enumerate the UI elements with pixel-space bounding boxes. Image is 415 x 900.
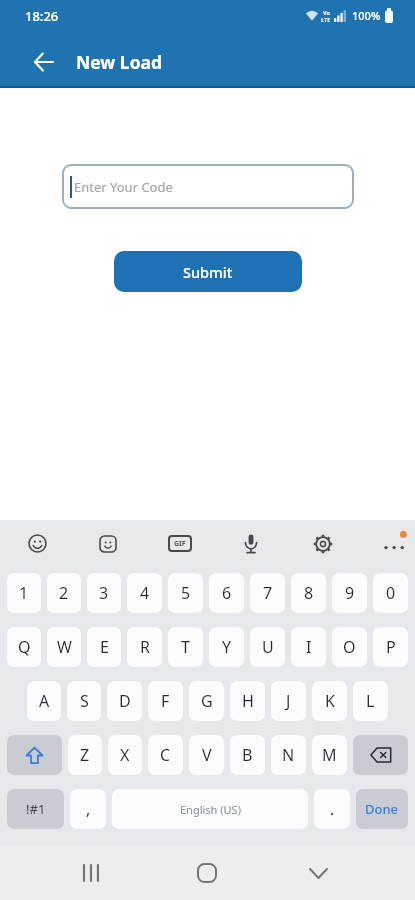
button[interactable]: B xyxy=(230,735,265,775)
button[interactable]: K xyxy=(312,681,347,721)
staticText: V xyxy=(202,744,212,766)
button[interactable]: D xyxy=(107,681,142,721)
button[interactable]: Enter Your Code xyxy=(62,164,354,209)
button[interactable]: Q xyxy=(7,627,41,667)
staticText: 2 xyxy=(59,582,69,604)
staticText: J xyxy=(286,690,291,712)
staticText: X xyxy=(120,744,130,766)
button[interactable] xyxy=(19,520,55,567)
button[interactable]: 6 xyxy=(209,573,244,613)
staticText: O xyxy=(343,636,356,658)
staticText: 5 xyxy=(181,582,191,604)
button[interactable]: M xyxy=(312,735,347,775)
staticText: 4 xyxy=(140,582,150,604)
staticText: Q xyxy=(18,636,31,658)
staticText: K xyxy=(325,690,335,712)
staticText: T xyxy=(181,636,190,658)
button[interactable]: P xyxy=(373,627,408,667)
staticText: Y xyxy=(222,636,232,658)
button[interactable]: S xyxy=(67,681,101,721)
staticText: 18:26 xyxy=(25,7,59,25)
staticText: , xyxy=(86,798,91,820)
staticText: . xyxy=(330,798,335,820)
staticText: L xyxy=(366,690,375,712)
button[interactable]: R xyxy=(127,627,162,667)
button[interactable]: W xyxy=(47,627,81,667)
staticText: 100% xyxy=(352,8,381,23)
button[interactable]: English (US) xyxy=(112,789,308,829)
button[interactable] xyxy=(298,853,338,893)
button[interactable] xyxy=(70,853,110,893)
button[interactable]: Z xyxy=(68,735,102,775)
staticText: 7 xyxy=(263,582,273,604)
button[interactable]: I xyxy=(291,627,326,667)
button[interactable]: . xyxy=(314,789,350,829)
button[interactable]: H xyxy=(230,681,265,721)
button[interactable]: L xyxy=(353,681,388,721)
staticText: New Load xyxy=(76,50,163,74)
staticText: A xyxy=(39,690,50,712)
staticText: E xyxy=(100,636,109,658)
staticText: W xyxy=(57,636,72,658)
button[interactable]: V xyxy=(189,735,224,775)
staticText: 1 xyxy=(19,582,29,604)
staticText: GIF xyxy=(174,539,186,549)
staticText: LTE xyxy=(321,16,331,23)
button[interactable]: A xyxy=(27,681,61,721)
button[interactable]: Y xyxy=(209,627,244,667)
staticText: 0 xyxy=(386,582,396,604)
button[interactable]: !#1 xyxy=(7,789,64,829)
staticText: D xyxy=(119,690,131,712)
button[interactable]: U xyxy=(250,627,285,667)
button[interactable]: 8 xyxy=(291,573,326,613)
button[interactable] xyxy=(187,853,227,893)
staticText: M xyxy=(322,744,337,766)
button[interactable] xyxy=(90,520,126,567)
button[interactable]: E xyxy=(87,627,121,667)
button[interactable]: 5 xyxy=(168,573,203,613)
staticText: 9 xyxy=(345,582,355,604)
button[interactable]: 1 xyxy=(7,573,41,613)
button[interactable]: 0 xyxy=(373,573,408,613)
staticText: 3 xyxy=(99,582,109,604)
staticText: G xyxy=(201,690,213,712)
staticText: Enter Your Code xyxy=(74,178,173,196)
staticText: U xyxy=(262,636,274,658)
staticText: N xyxy=(282,744,295,766)
staticText: Submit xyxy=(183,262,233,282)
staticText: P xyxy=(386,636,396,658)
staticText: English (US) xyxy=(180,802,241,817)
button[interactable]: 4 xyxy=(127,573,162,613)
button[interactable]: J xyxy=(271,681,306,721)
button[interactable]: X xyxy=(108,735,142,775)
button[interactable]: 7 xyxy=(250,573,285,613)
button[interactable]: F xyxy=(148,681,183,721)
button[interactable]: O xyxy=(332,627,367,667)
staticText: 6 xyxy=(222,582,232,604)
staticText: Done xyxy=(365,800,399,818)
button[interactable]: Done xyxy=(356,789,408,829)
staticText: R xyxy=(140,636,150,658)
staticText: F xyxy=(161,690,170,712)
button[interactable] xyxy=(34,41,76,83)
button[interactable] xyxy=(353,735,408,775)
button[interactable]: 3 xyxy=(87,573,121,613)
button[interactable] xyxy=(374,520,410,567)
button[interactable]: C xyxy=(148,735,183,775)
button[interactable] xyxy=(305,520,341,567)
staticText: S xyxy=(80,690,89,712)
button[interactable]: N xyxy=(271,735,306,775)
staticText: 8 xyxy=(304,582,314,604)
button[interactable]: 2 xyxy=(47,573,81,613)
staticText: B xyxy=(242,744,253,766)
button[interactable]: GIF xyxy=(162,520,198,567)
button[interactable]: G xyxy=(189,681,224,721)
button[interactable]: 9 xyxy=(332,573,367,613)
button[interactable] xyxy=(7,735,62,775)
staticText: Vo xyxy=(323,9,330,16)
button[interactable]: T xyxy=(168,627,203,667)
staticText: H xyxy=(242,690,254,712)
button[interactable]: , xyxy=(70,789,106,829)
button[interactable] xyxy=(233,520,269,567)
button[interactable]: Submit xyxy=(114,251,302,292)
